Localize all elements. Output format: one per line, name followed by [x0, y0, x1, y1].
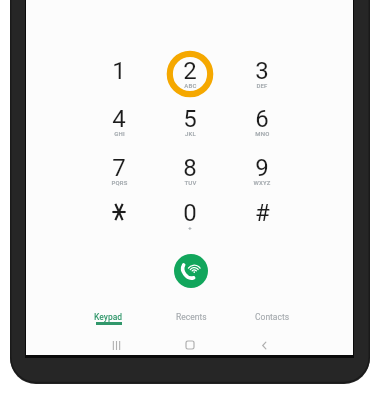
staticText: 6 [255, 105, 269, 133]
staticText: + [188, 224, 192, 231]
staticText: 5 [183, 105, 197, 133]
staticText: 7 [112, 154, 126, 182]
staticText: DEF [256, 82, 268, 89]
button[interactable]: 8 [159, 144, 221, 190]
button[interactable]: Recent apps [104, 333, 128, 357]
staticText: 4 [112, 105, 126, 133]
staticText: Keypad [94, 312, 123, 322]
staticText: 8 [183, 154, 197, 182]
button[interactable]: 9 [231, 144, 293, 190]
staticText: PQRS [111, 179, 128, 186]
button[interactable]: 1 [88, 47, 150, 93]
button[interactable]: Contacts [234, 312, 310, 340]
button[interactable]: 7 [88, 144, 150, 190]
button[interactable]: 3 [231, 47, 293, 93]
staticText: TUV [184, 179, 197, 186]
button[interactable] [88, 189, 150, 235]
button[interactable]: 2 [159, 47, 221, 93]
button[interactable]: Back [252, 333, 276, 357]
button[interactable]: Call [174, 254, 208, 288]
staticText: 1 [112, 57, 126, 85]
button[interactable]: 4 [88, 95, 150, 141]
staticText: Recents [176, 312, 207, 322]
button[interactable]: # [231, 189, 293, 235]
button[interactable]: Home [178, 333, 202, 357]
staticText: WXYZ [253, 179, 271, 186]
staticText: GHI [114, 130, 125, 137]
staticText: JKL [185, 130, 196, 137]
staticText: Contacts [255, 312, 290, 322]
staticText: MNO [255, 130, 270, 137]
button[interactable]: Keypad [70, 312, 146, 340]
staticText: 0 [183, 199, 197, 227]
button[interactable]: 6 [231, 95, 293, 141]
staticText: ABC [184, 82, 197, 89]
staticText: 2 [183, 57, 197, 85]
button[interactable]: Recents [153, 312, 229, 340]
staticText: # [255, 199, 270, 227]
staticText: 9 [255, 154, 269, 182]
button[interactable]: 5 [159, 95, 221, 141]
staticText: 3 [255, 57, 269, 85]
button[interactable]: 0 [159, 189, 221, 235]
